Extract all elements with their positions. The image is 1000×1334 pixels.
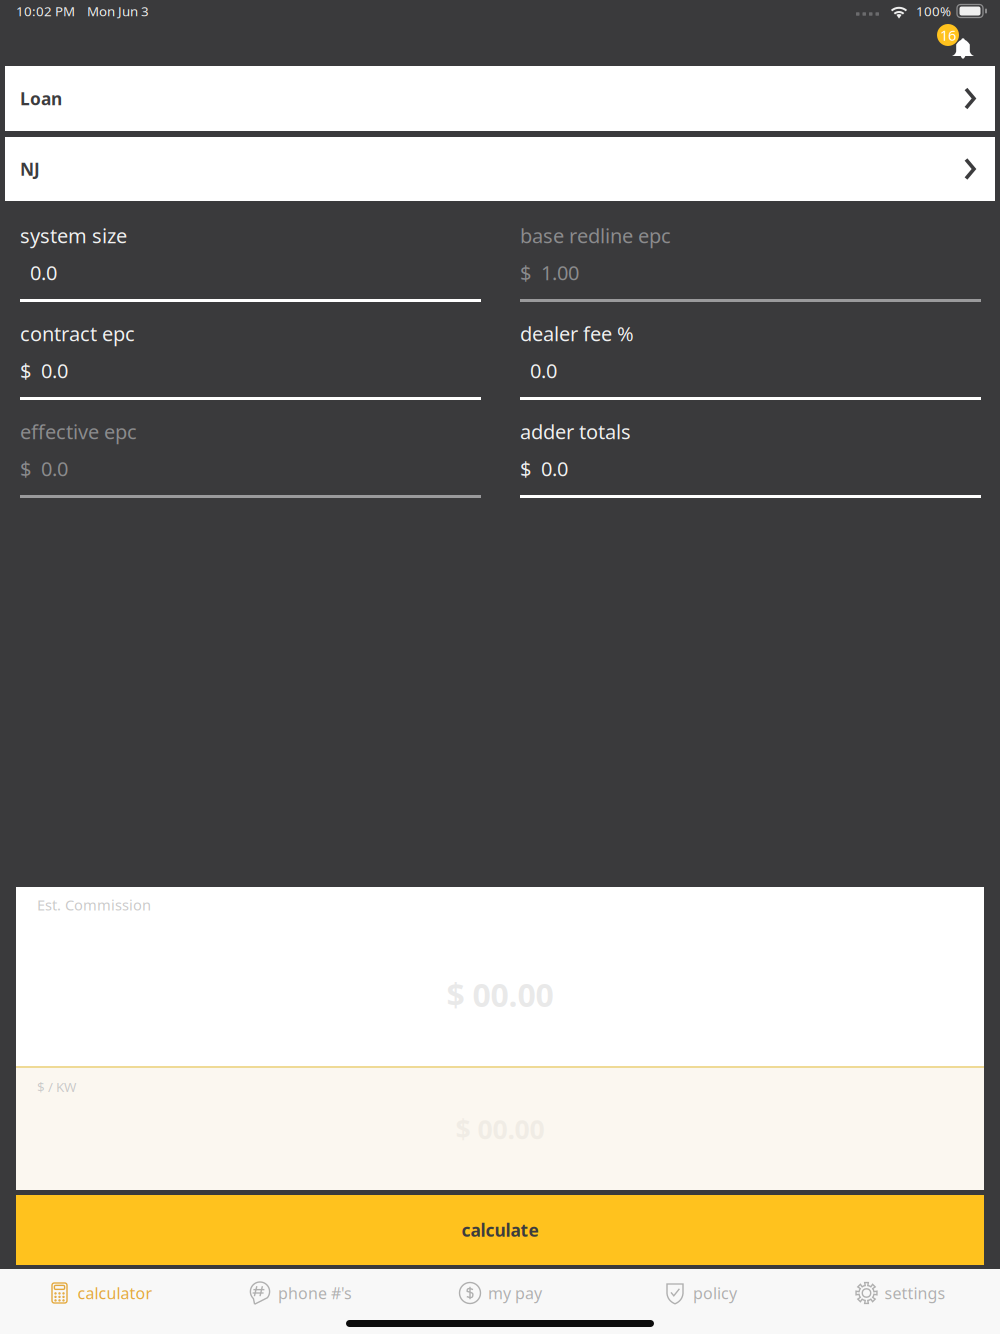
staticText: $ / KW <box>37 1078 76 1096</box>
staticText: Est. Commission <box>37 895 151 914</box>
staticText: effective epc <box>20 418 137 445</box>
staticText: 16 <box>940 25 956 45</box>
staticText: contract epc <box>20 320 135 347</box>
staticText: my pay <box>488 1282 542 1304</box>
staticText: Mon Jun 3 <box>87 2 149 20</box>
button[interactable]: Notifications <box>926 24 986 72</box>
staticText: base redline epc <box>520 222 671 249</box>
staticText: $ <box>520 259 531 286</box>
staticText: NJ <box>20 157 40 180</box>
staticText: 1.00 <box>541 259 579 286</box>
button[interactable]: policy <box>600 1269 800 1317</box>
staticText: $ <box>520 455 531 482</box>
staticText: $ 00.00 <box>446 973 553 1016</box>
staticText: system size <box>20 222 127 249</box>
staticText: 0.0 <box>41 357 68 384</box>
staticText: $ <box>20 455 31 482</box>
staticText: settings <box>884 1282 945 1304</box>
staticText: 10:02 PM <box>16 2 75 20</box>
staticText: 100% <box>916 2 951 20</box>
button[interactable]: calculator <box>0 1269 200 1317</box>
staticText: 0.0 <box>541 455 568 482</box>
staticText: policy <box>693 1282 737 1304</box>
staticText: Loan <box>20 87 62 110</box>
button[interactable]: phone #'s <box>200 1269 400 1317</box>
button[interactable]: Loan <box>5 66 995 131</box>
staticText: adder totals <box>520 418 631 445</box>
staticText: dealer fee % <box>520 320 634 347</box>
staticText: calculator <box>77 1282 152 1304</box>
staticText: 0.0 <box>30 259 57 286</box>
staticText: 0.0 <box>530 357 557 384</box>
staticText: $ 00.00 <box>455 1111 544 1147</box>
button[interactable]: my pay <box>400 1269 600 1317</box>
staticText: calculate <box>461 1218 538 1241</box>
staticText: $ <box>20 357 31 384</box>
button[interactable]: settings <box>800 1269 1000 1317</box>
staticText: 0.0 <box>41 455 68 482</box>
button[interactable]: NJ <box>5 137 995 201</box>
button[interactable]: calculate <box>16 1195 984 1265</box>
staticText: phone #'s <box>278 1282 352 1304</box>
